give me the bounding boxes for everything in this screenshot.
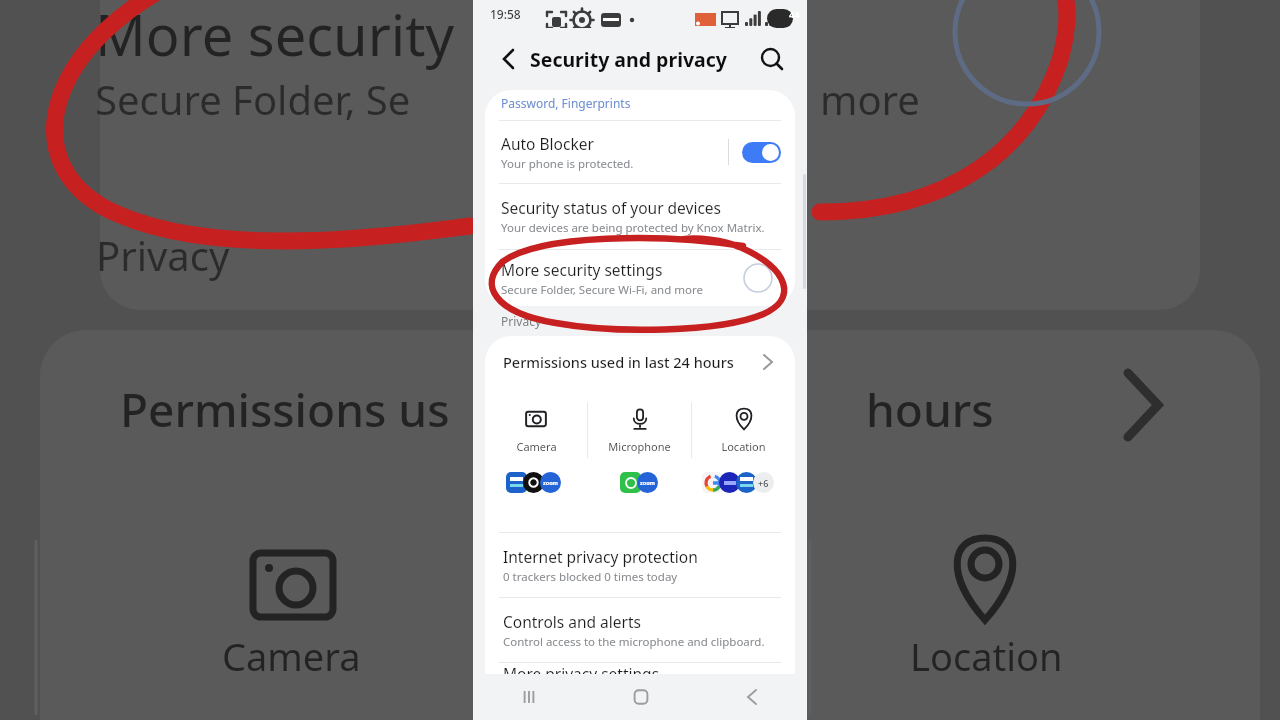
staticText: Controls and alerts <box>503 611 641 632</box>
staticText: Permissions us <box>120 378 450 441</box>
staticText: Camera <box>222 630 361 682</box>
button[interactable]: Back <box>696 674 807 720</box>
staticText: Secure Folder, Se <box>95 72 411 126</box>
button[interactable]: More privacy settings <box>485 663 795 674</box>
staticText: Microphone <box>608 439 671 454</box>
button[interactable]: Auto Blocker toggle <box>742 142 781 163</box>
staticText: More security <box>95 0 455 72</box>
staticText: Security status of your devices <box>501 197 722 218</box>
button[interactable]: Recent apps <box>473 674 585 720</box>
staticText: 44 <box>789 8 800 20</box>
button[interactable]: Camera <box>485 388 587 472</box>
button[interactable]: Auto Blocker <box>485 121 795 183</box>
button[interactable]: Navigate up <box>493 44 523 74</box>
button[interactable]: Internet privacy protection <box>485 533 795 597</box>
staticText: Camera <box>516 439 557 454</box>
staticText: Location <box>721 439 766 454</box>
staticText: Permissions used in last 24 hours <box>503 352 759 372</box>
staticText: More security settings <box>501 259 663 280</box>
staticText: Privacy <box>501 313 542 329</box>
staticText: Password, Fingerprints <box>501 95 631 111</box>
staticText: 19:58 <box>490 6 521 22</box>
staticText: 0 trackers blocked 0 times today <box>503 569 678 585</box>
staticText: +6 <box>758 477 769 489</box>
staticText: Security and privacy <box>530 46 727 73</box>
staticText: Your devices are being protected by Knox… <box>501 220 765 236</box>
button[interactable]: Location <box>692 388 795 472</box>
button[interactable]: Microphone <box>588 388 691 472</box>
button[interactable]: Search <box>757 44 787 74</box>
staticText: Control access to the microphone and cli… <box>503 634 765 650</box>
button[interactable]: Home <box>585 674 696 720</box>
staticText: Auto Blocker <box>501 133 594 154</box>
staticText: More privacy settings <box>503 663 660 674</box>
staticText: Internet privacy protection <box>503 546 698 567</box>
button[interactable]: Permissions used in last 24 hours <box>485 336 795 388</box>
button[interactable]: Security status of your devices <box>485 184 795 249</box>
button[interactable]: Controls and alerts <box>485 598 795 662</box>
staticText: Privacy <box>96 228 230 282</box>
staticText: more <box>820 72 920 126</box>
staticText: Location <box>910 630 1063 682</box>
staticText: Your phone is protected. <box>501 156 634 172</box>
staticText: Secure Folder, Secure Wi-Fi, and more <box>501 282 703 298</box>
staticText: hours <box>866 378 994 441</box>
staticText: zoom <box>543 479 558 486</box>
button[interactable]: More security settings <box>485 250 795 306</box>
staticText: zoom <box>640 479 655 486</box>
